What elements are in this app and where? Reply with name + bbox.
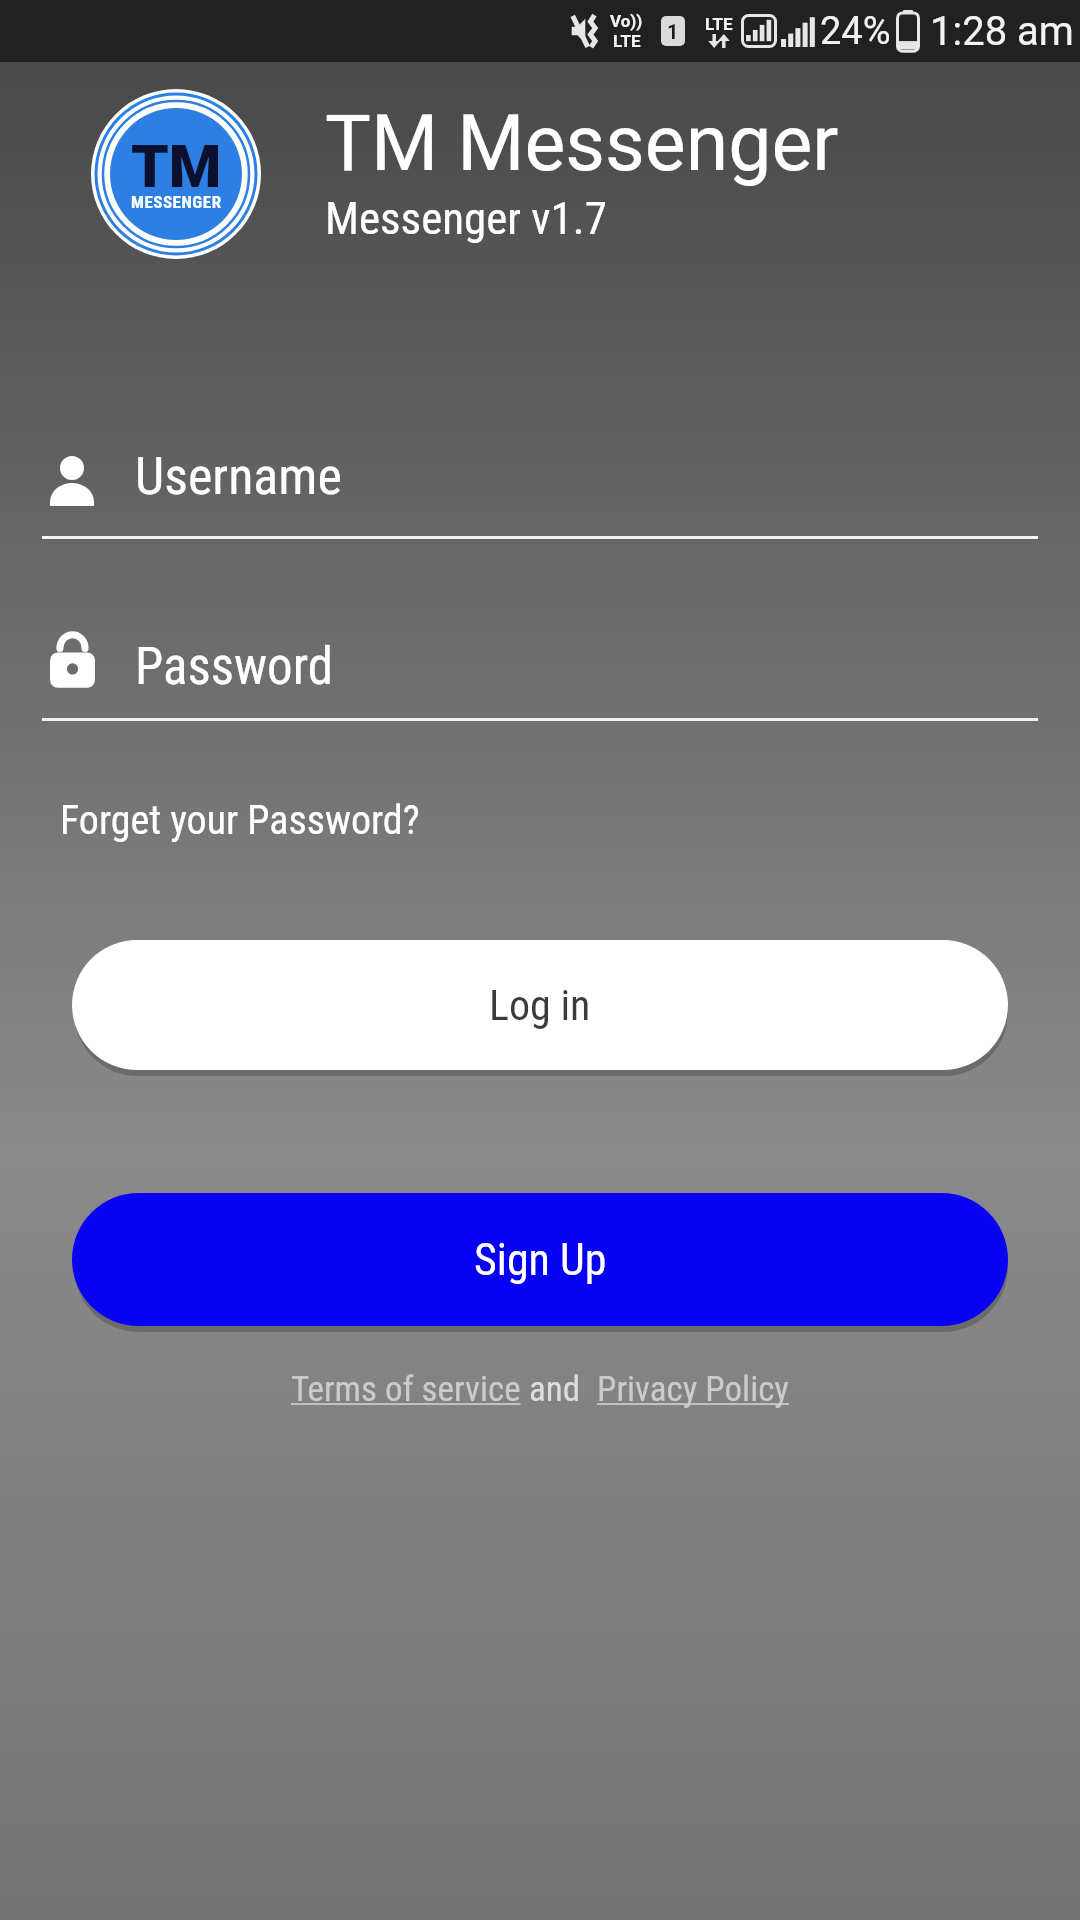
staticText: Password [135, 637, 334, 697]
staticText: 1:28 am [930, 8, 1074, 55]
button[interactable]: Forget your Password? [60, 797, 420, 844]
staticText: LTE [613, 31, 641, 51]
button[interactable]: Log in [72, 940, 1008, 1070]
staticText: Messenger v1.7 [325, 192, 607, 245]
staticText: Log in [489, 981, 591, 1030]
button[interactable]: Terms of service [291, 1369, 521, 1410]
staticText: Username [135, 446, 342, 507]
button[interactable]: Sign Up [72, 1193, 1008, 1326]
staticText: MESSENGER [131, 192, 222, 212]
staticText: LTE [705, 14, 733, 34]
button[interactable]: Privacy Policy [597, 1369, 789, 1410]
staticText: TM Messenger [325, 99, 839, 189]
staticText: Sign Up [474, 1234, 607, 1286]
staticText: Vo)) [610, 11, 643, 31]
staticText: 24% [820, 9, 891, 54]
staticText: 1 [667, 20, 679, 43]
staticText: TM [131, 131, 222, 201]
staticText: and [521, 1369, 597, 1410]
